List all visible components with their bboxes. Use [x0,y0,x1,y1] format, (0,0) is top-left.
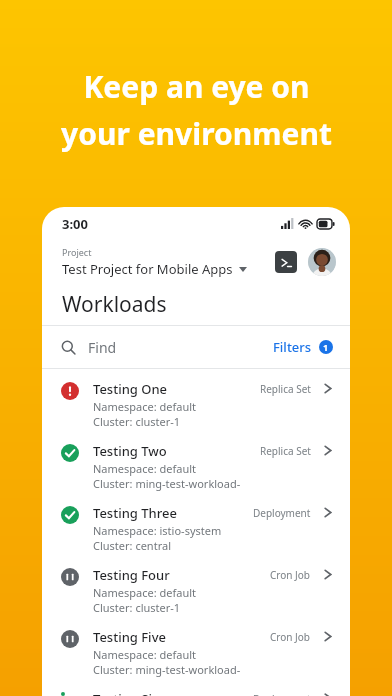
button[interactable]: Testing Six [42,684,350,696]
button[interactable]: Find [42,326,350,368]
staticText: Testing Five [93,628,166,646]
button[interactable]: Testing Two [42,436,350,498]
staticText: Testing Three [93,504,177,522]
button[interactable]: Testing Five [42,622,350,684]
staticText: Cluster: central [93,538,171,553]
staticText: Namespace: default [93,647,197,662]
staticText: Cron Job [270,568,311,582]
staticText: Replica Set [260,444,311,458]
staticText: Replica Set [260,382,311,396]
button[interactable]: Account profile [308,248,336,276]
staticText: Keep an eye on [83,66,310,107]
staticText: Namespace: default [93,585,197,600]
staticText: Filters [273,338,312,356]
button[interactable]: Testing Four [42,560,350,622]
staticText: Namespace: default [93,399,197,414]
staticText: Cluster: cluster-1 [93,600,181,615]
staticText: Cluster: ming-test-workload-cluster [93,476,254,491]
button[interactable]: Testing One [42,374,350,436]
staticText: Cluster: cluster-1 [93,414,181,429]
staticText: Deployment [253,506,311,520]
staticText: Test Project for Mobile Apps [62,260,233,278]
staticText: Testing Six [93,690,159,696]
staticText: Namespace: istio-system [93,523,222,538]
staticText: Workloads [62,290,167,319]
staticText: Project [62,246,92,258]
button[interactable]: Filters [273,338,333,356]
staticText: Testing One [93,380,168,398]
button[interactable]: Project [62,246,275,278]
staticText: 3:00 [62,215,88,233]
staticText: Namespace: default [93,461,197,476]
button[interactable]: Testing Three [42,498,350,560]
staticText: Testing Four [93,566,170,584]
staticText: 1 [323,341,329,353]
staticText: Cron Job [270,630,311,644]
staticText: Testing Two [93,442,167,460]
staticText: Cluster: ming-test-workload-cluster [93,662,264,677]
button[interactable]: Open Cloud Shell terminal [275,251,297,273]
staticText: Find [88,338,117,357]
staticText: Deployment [253,692,311,696]
staticText: your environment [61,113,332,154]
